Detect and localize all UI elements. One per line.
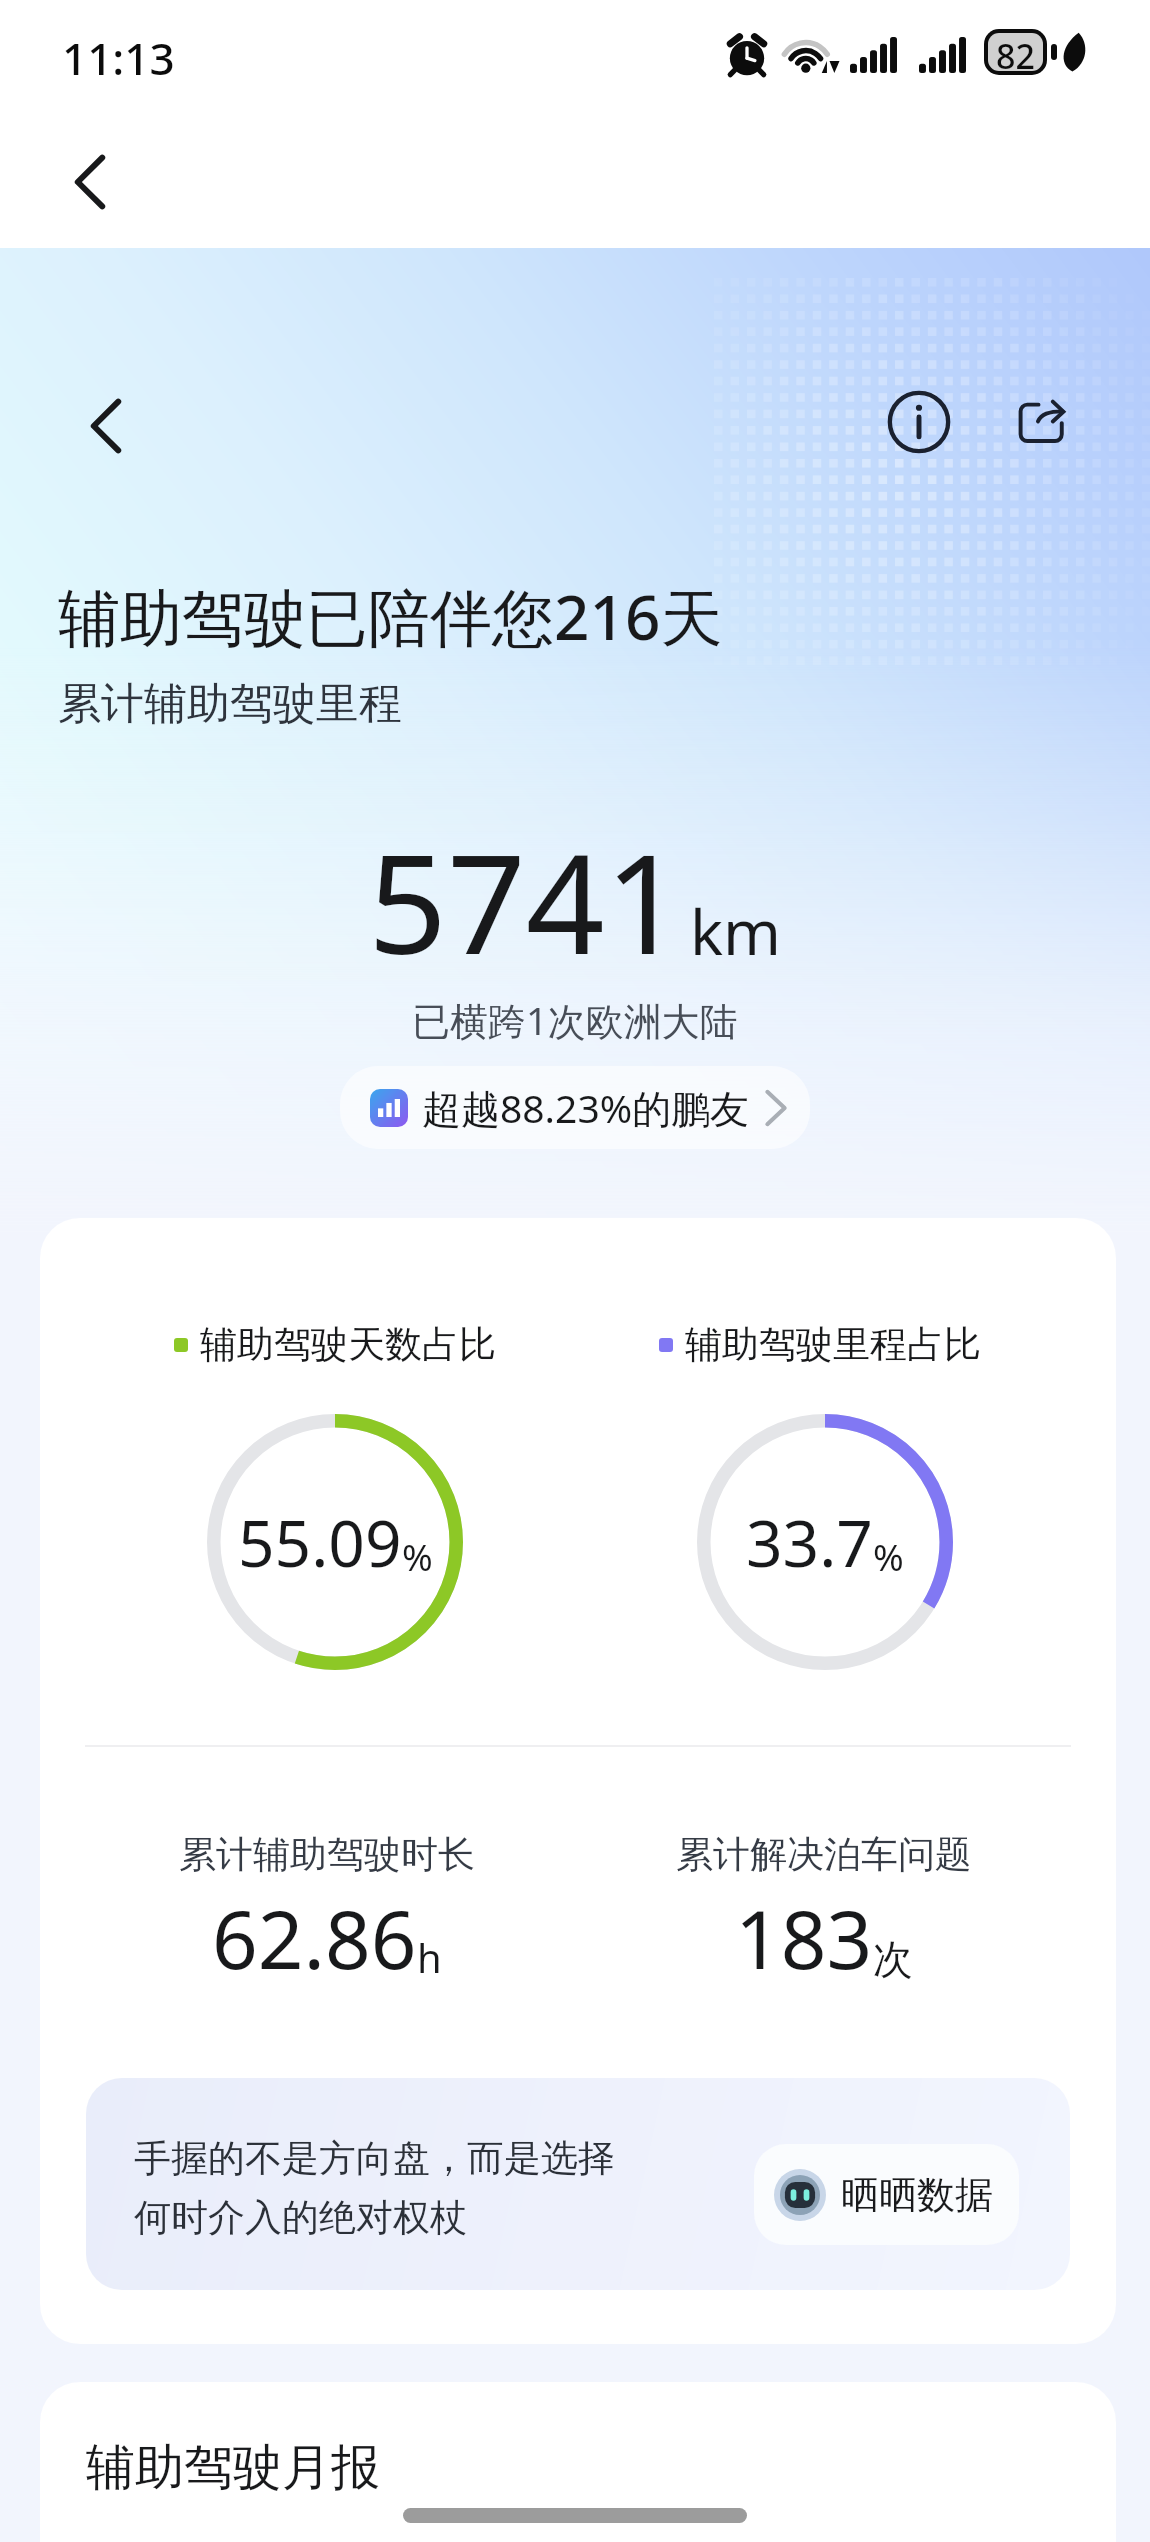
staticText: 11:13 (62, 28, 175, 88)
button[interactable]: Back (58, 378, 154, 474)
staticText: % (873, 1531, 904, 1581)
staticText: 辅助驾驶已陪伴您216天 (58, 574, 723, 659)
staticText: 累计辅助驾驶时长 (179, 1831, 475, 1878)
button[interactable]: 晒晒数据 (754, 2144, 1019, 2245)
staticText: 辅助驾驶里程占比 (685, 1321, 981, 1368)
staticText: 辅助驾驶月报 (86, 2437, 380, 2499)
staticText: 5741 (368, 806, 684, 994)
staticText: % (402, 1531, 433, 1581)
staticText: 晒晒数据 (841, 2171, 993, 2219)
staticText: h (417, 1930, 442, 1984)
staticText: 已横跨1次欧洲大陆 (412, 994, 738, 1046)
staticText: 超越88.23%的鹏友 (422, 1081, 750, 1134)
staticText: 62.86 (212, 1883, 417, 1992)
button[interactable]: Back (42, 134, 138, 230)
staticText: km (690, 889, 782, 973)
staticText: 累计解决泊车问题 (676, 1831, 972, 1878)
staticText: 183 (735, 1883, 873, 1992)
staticText: 累计辅助驾驶里程 (58, 677, 402, 731)
staticText: 次 (873, 1934, 913, 1984)
staticText: 手握的不是方向盘，而是选择 何时介入的绝对权杖 (134, 2135, 615, 2241)
button[interactable]: 辅助驾驶月报 (40, 2382, 1116, 2542)
button[interactable]: Share (993, 372, 1093, 472)
staticText: 55.09 (238, 1499, 402, 1586)
staticText: 82 (996, 33, 1035, 71)
staticText: 辅助驾驶天数占比 (200, 1321, 496, 1368)
staticText: 33.7 (746, 1499, 873, 1586)
button[interactable]: Info (869, 372, 969, 472)
button[interactable]: 超越88.23%的鹏友 (340, 1066, 810, 1149)
